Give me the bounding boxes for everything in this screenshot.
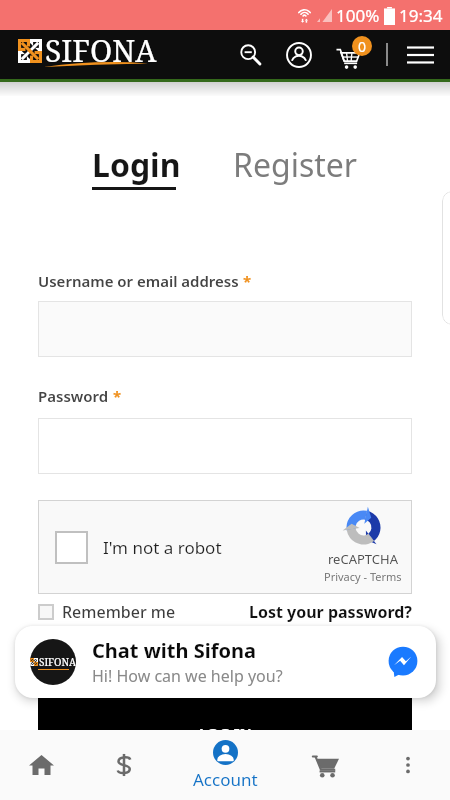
- button[interactable]: Register: [233, 143, 358, 187]
- staticText: Login: [92, 143, 181, 187]
- staticText: *: [113, 386, 122, 406]
- staticText: Privacy - Terms: [324, 569, 402, 584]
- button[interactable]: Home: [0, 730, 82, 800]
- staticText: SIFONA: [39, 655, 76, 669]
- staticText: I'm not a robot: [103, 536, 222, 559]
- button[interactable]: Account: [165, 730, 285, 800]
- button[interactable]: [38, 418, 412, 474]
- staticText: Chat with Sifona: [92, 637, 256, 664]
- staticText: reCAPTCHA: [328, 550, 398, 568]
- staticText: Username or email address: [38, 271, 239, 291]
- button[interactable]: [55, 531, 88, 564]
- button[interactable]: Account: [277, 30, 321, 79]
- staticText: Hi! How can we help you?: [92, 665, 283, 687]
- button[interactable]: Remember me: [38, 601, 176, 623]
- button[interactable]: Messenger: [386, 645, 420, 679]
- staticText: Remember me: [62, 601, 176, 623]
- staticText: 19:34: [399, 4, 443, 27]
- staticText: 0: [358, 37, 367, 56]
- button[interactable]: SIFONA: [18, 30, 157, 71]
- button[interactable]: Cart: [328, 30, 374, 79]
- button[interactable]: Lost your password?: [249, 601, 412, 623]
- button[interactable]: Login: [92, 143, 181, 190]
- button[interactable]: Cart: [285, 730, 365, 800]
- staticText: Password: [38, 386, 109, 406]
- staticText: 100%: [336, 4, 380, 27]
- button[interactable]: Prices: [82, 730, 165, 800]
- button[interactable]: Menu: [399, 30, 441, 79]
- button[interactable]: [38, 301, 412, 357]
- button[interactable]: LOG IN: [38, 695, 412, 757]
- button[interactable]: More options: [365, 730, 450, 800]
- staticText: LOG IN: [199, 723, 252, 743]
- staticText: Account: [193, 768, 258, 791]
- button[interactable]: SIFONA: [15, 626, 436, 698]
- staticText: *: [243, 271, 252, 291]
- button[interactable]: Search: [230, 30, 270, 79]
- staticText: SIFONA: [45, 30, 157, 71]
